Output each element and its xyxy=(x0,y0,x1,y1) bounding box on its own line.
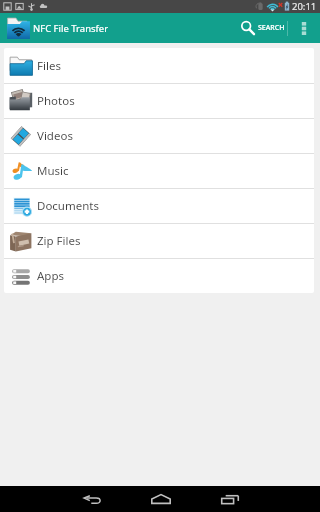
button[interactable]: Videos xyxy=(4,119,314,153)
button[interactable]: Recent apps xyxy=(208,486,252,512)
button[interactable]: Home xyxy=(139,486,183,512)
button[interactable]: Music xyxy=(4,154,314,188)
button[interactable]: More options xyxy=(288,13,320,43)
button[interactable]: Apps xyxy=(4,259,314,293)
staticText: Documents xyxy=(37,198,99,214)
staticText: Apps xyxy=(37,268,65,284)
staticText: Zip Files xyxy=(37,233,81,249)
staticText: Files xyxy=(37,58,61,74)
staticText: Music xyxy=(37,163,69,179)
button[interactable]: Zip Files xyxy=(4,224,314,258)
staticText: Photos xyxy=(37,93,75,109)
button[interactable]: Files xyxy=(4,48,314,83)
staticText: Videos xyxy=(37,128,73,144)
button[interactable]: Back xyxy=(70,486,114,512)
button[interactable]: SEARCH xyxy=(235,13,287,43)
button[interactable]: Photos xyxy=(4,84,314,118)
staticText: SEARCH xyxy=(258,23,285,33)
button[interactable]: Documents xyxy=(4,189,314,223)
staticText: NFC File Transfer xyxy=(33,22,109,35)
staticText: 20:11 xyxy=(292,0,317,13)
